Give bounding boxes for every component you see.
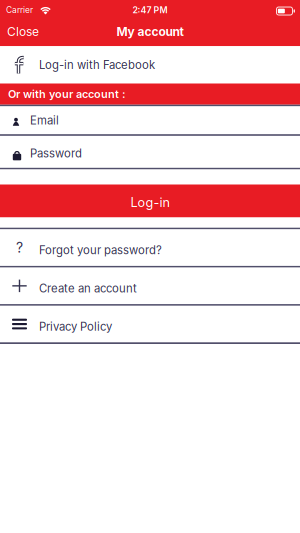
button[interactable]: Log-in with Facebook	[0, 46, 300, 83]
staticText: Or with your account :	[8, 87, 125, 101]
button[interactable]: Privacy Policy	[0, 306, 300, 342]
staticText: Password	[30, 146, 82, 160]
staticText: Close	[7, 24, 39, 39]
button[interactable]: Email	[0, 106, 300, 134]
staticText: Create an account	[39, 281, 137, 295]
staticText: Log-in	[130, 195, 169, 210]
button[interactable]: ?	[0, 229, 300, 266]
staticText: My account	[116, 24, 183, 39]
button[interactable]: Create an account	[0, 268, 300, 304]
button[interactable]: Password	[0, 136, 300, 168]
staticText: Carrier	[6, 5, 33, 15]
staticText: Forgot your password?	[39, 243, 162, 257]
button[interactable]: Close	[7, 24, 39, 39]
staticText: Privacy Policy	[39, 320, 112, 333]
staticText: ?	[16, 239, 23, 256]
staticText: Log-in with Facebook	[39, 58, 155, 72]
staticText: 2:47 PM	[132, 5, 167, 15]
staticText: Email	[30, 113, 59, 127]
button[interactable]: Log-in	[0, 184, 300, 217]
